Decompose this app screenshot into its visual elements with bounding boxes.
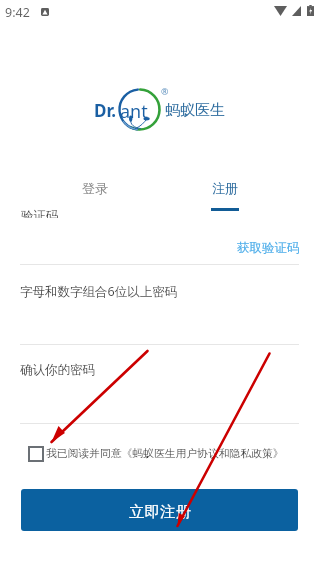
staticText: ant (120, 99, 148, 124)
staticText: 字母和数字组合6位以上密码 (20, 283, 178, 300)
button[interactable]: 获取验证码 (230, 236, 300, 260)
staticText: 获取验证码 (237, 240, 300, 256)
staticText: 登录 (82, 180, 108, 196)
staticText: 我已阅读并同意《蚂蚁医生用户协议和隐私政策》 (46, 447, 284, 461)
button[interactable]: 我已阅读并同意《蚂蚁医生用户协议和隐私政策》 (24, 442, 284, 466)
button[interactable]: 注册 (159, 174, 290, 212)
staticText: 9:42 (5, 4, 30, 21)
button[interactable]: Password field (20, 265, 299, 344)
button[interactable]: 登录 (29, 174, 160, 212)
staticText: ® (161, 85, 169, 97)
staticText: 注册 (212, 180, 238, 196)
staticText: 立即注册 (129, 502, 191, 522)
staticText: 确认你的密码 (20, 362, 95, 378)
button[interactable]: Confirm password field (20, 345, 299, 423)
staticText: Dr. (94, 99, 117, 122)
button[interactable]: 立即注册 (21, 489, 298, 531)
staticText: 蚂蚁医生 (165, 101, 225, 120)
staticText: 验证码 (21, 208, 59, 218)
